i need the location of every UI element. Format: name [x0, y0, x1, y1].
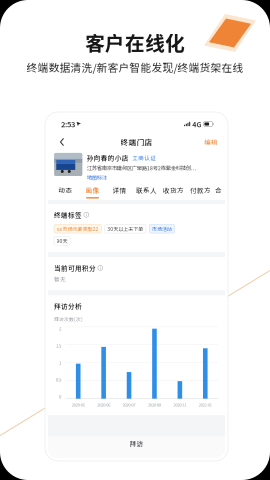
staticText: 付款方 [190, 185, 211, 195]
staticText: 30天以上未下单 [107, 225, 143, 232]
staticText: 4G [192, 119, 201, 129]
button[interactable]: 详情 [106, 184, 133, 200]
button[interactable]: 返回 [54, 133, 70, 150]
staticText: 联系人 [136, 185, 157, 195]
staticText: 1.5 [56, 343, 61, 349]
staticText: 详情 [112, 185, 126, 195]
button[interactable]: 合 [214, 184, 223, 200]
button[interactable]: 收货方 [160, 184, 187, 200]
staticText: 暂无 [54, 275, 66, 283]
staticText: 当前可用积分 [54, 263, 96, 273]
staticText: 2020-05 [72, 402, 85, 408]
staticText: 市场活动 [152, 225, 172, 232]
staticText: 2020-06 [97, 402, 110, 408]
staticText: 0.5 [56, 377, 61, 383]
staticText: xx市场元素类型22 [57, 225, 99, 232]
staticText: 编辑 [204, 137, 218, 147]
staticText: 2:53 [61, 118, 75, 129]
staticText: 江苏省南京市建邺区广聚路18号2栋紫金科技创... [87, 164, 197, 172]
staticText: 2020-11 [173, 402, 186, 408]
staticText: 动态 [58, 185, 72, 195]
staticText: 拜访次数(次) [54, 316, 83, 323]
staticText: 2 [59, 326, 61, 332]
staticText: 2020-07 [122, 402, 135, 408]
staticText: 1 [59, 360, 61, 366]
staticText: 0 [59, 394, 61, 400]
staticText: 工商认证 [132, 154, 156, 162]
button[interactable]: 画像 [79, 184, 106, 200]
staticText: 画像 [85, 185, 99, 195]
staticText: 合 [215, 185, 222, 195]
staticText: 拜访分析 [54, 301, 82, 311]
staticText: 终端门店 [120, 136, 152, 147]
staticText: 孙向春的小店 [87, 153, 129, 162]
button[interactable]: 联系人 [133, 184, 160, 200]
staticText: 终端数据清洗/新客户智能发现/终端货架在线 [26, 59, 243, 75]
staticText: 地图标注 [87, 173, 107, 181]
staticText: 拜访 [129, 439, 143, 448]
button[interactable]: 编辑 [203, 133, 219, 150]
button[interactable]: 拜访 [48, 436, 225, 458]
staticText: 收货方 [163, 185, 184, 195]
staticText: 客户在线化 [85, 28, 185, 56]
staticText: 终端标签 [54, 210, 82, 219]
staticText: 2020-08 [148, 402, 161, 408]
staticText: 2021-01 [199, 402, 212, 408]
staticText: 90天 [57, 237, 68, 244]
button[interactable]: 动态 [52, 184, 79, 200]
button[interactable]: 付款方 [187, 184, 214, 200]
